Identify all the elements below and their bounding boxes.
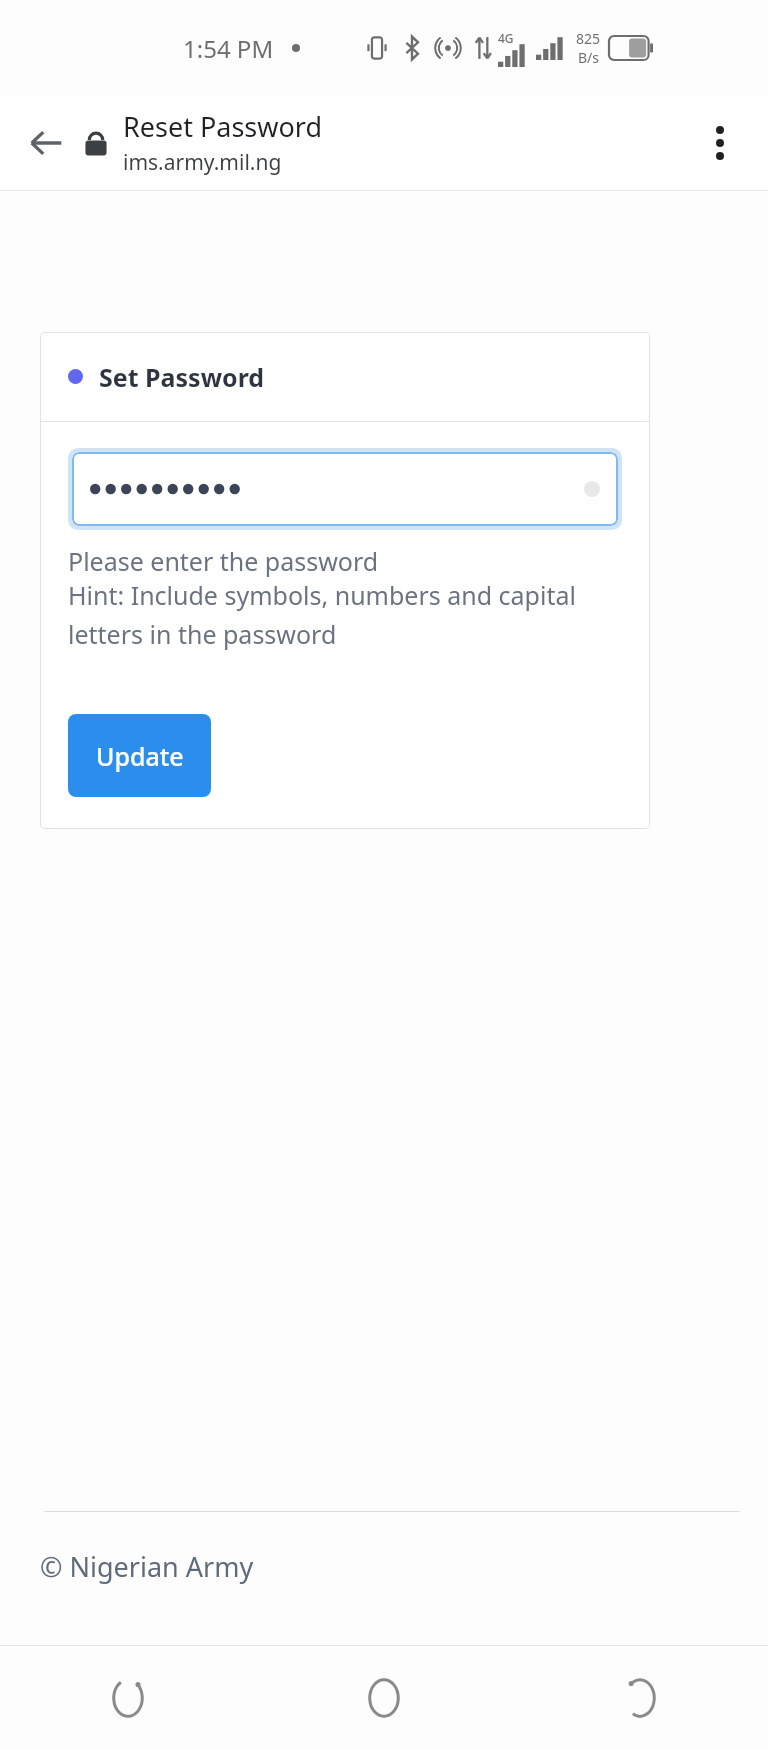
button[interactable]: Home bbox=[256, 1646, 512, 1749]
button[interactable]: Back bbox=[512, 1646, 768, 1749]
staticText: Reset Password bbox=[123, 108, 323, 145]
button[interactable]: Update bbox=[68, 714, 211, 797]
button[interactable]: Recents bbox=[0, 1646, 256, 1749]
button[interactable]: Back bbox=[14, 111, 78, 175]
staticText: Set Password bbox=[99, 360, 265, 394]
staticText: ims.army.mil.ng bbox=[123, 148, 282, 177]
staticText: B/s bbox=[578, 48, 600, 67]
staticText: Please enter the password bbox=[68, 544, 379, 578]
staticText: 825 bbox=[576, 29, 601, 48]
staticText: 4G bbox=[498, 30, 514, 46]
staticText: Hint: Include symbols, numbers and capit… bbox=[68, 578, 622, 652]
staticText: 1:54 PM bbox=[183, 32, 274, 65]
staticText: © Nigerian Army bbox=[40, 1548, 254, 1585]
button[interactable] bbox=[72, 452, 618, 526]
staticText: Update bbox=[96, 739, 184, 773]
button[interactable]: More options bbox=[690, 113, 750, 173]
